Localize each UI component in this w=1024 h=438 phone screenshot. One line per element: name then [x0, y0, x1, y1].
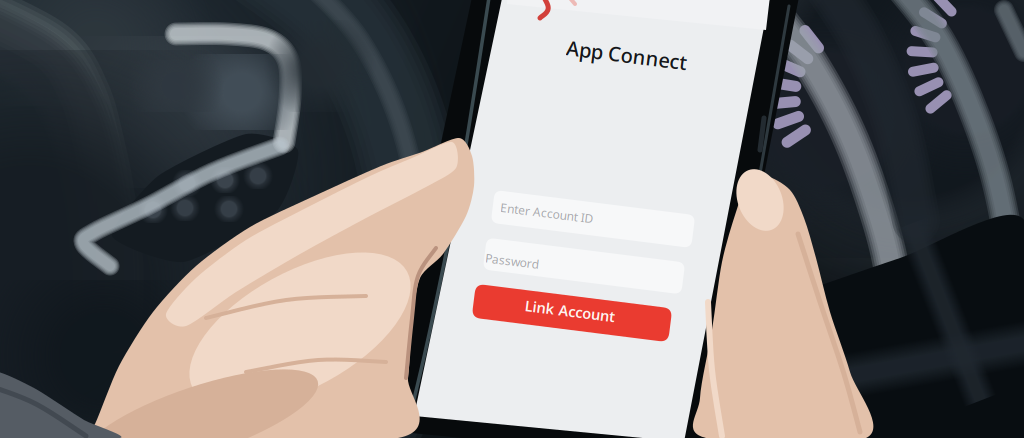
staticText: Enter Account ID — [500, 205, 594, 221]
button[interactable]: Link Account — [0, 0, 1024, 438]
staticText: App Connect — [566, 42, 688, 68]
staticText: Link Account — [524, 301, 615, 321]
staticText: Password — [485, 253, 539, 269]
